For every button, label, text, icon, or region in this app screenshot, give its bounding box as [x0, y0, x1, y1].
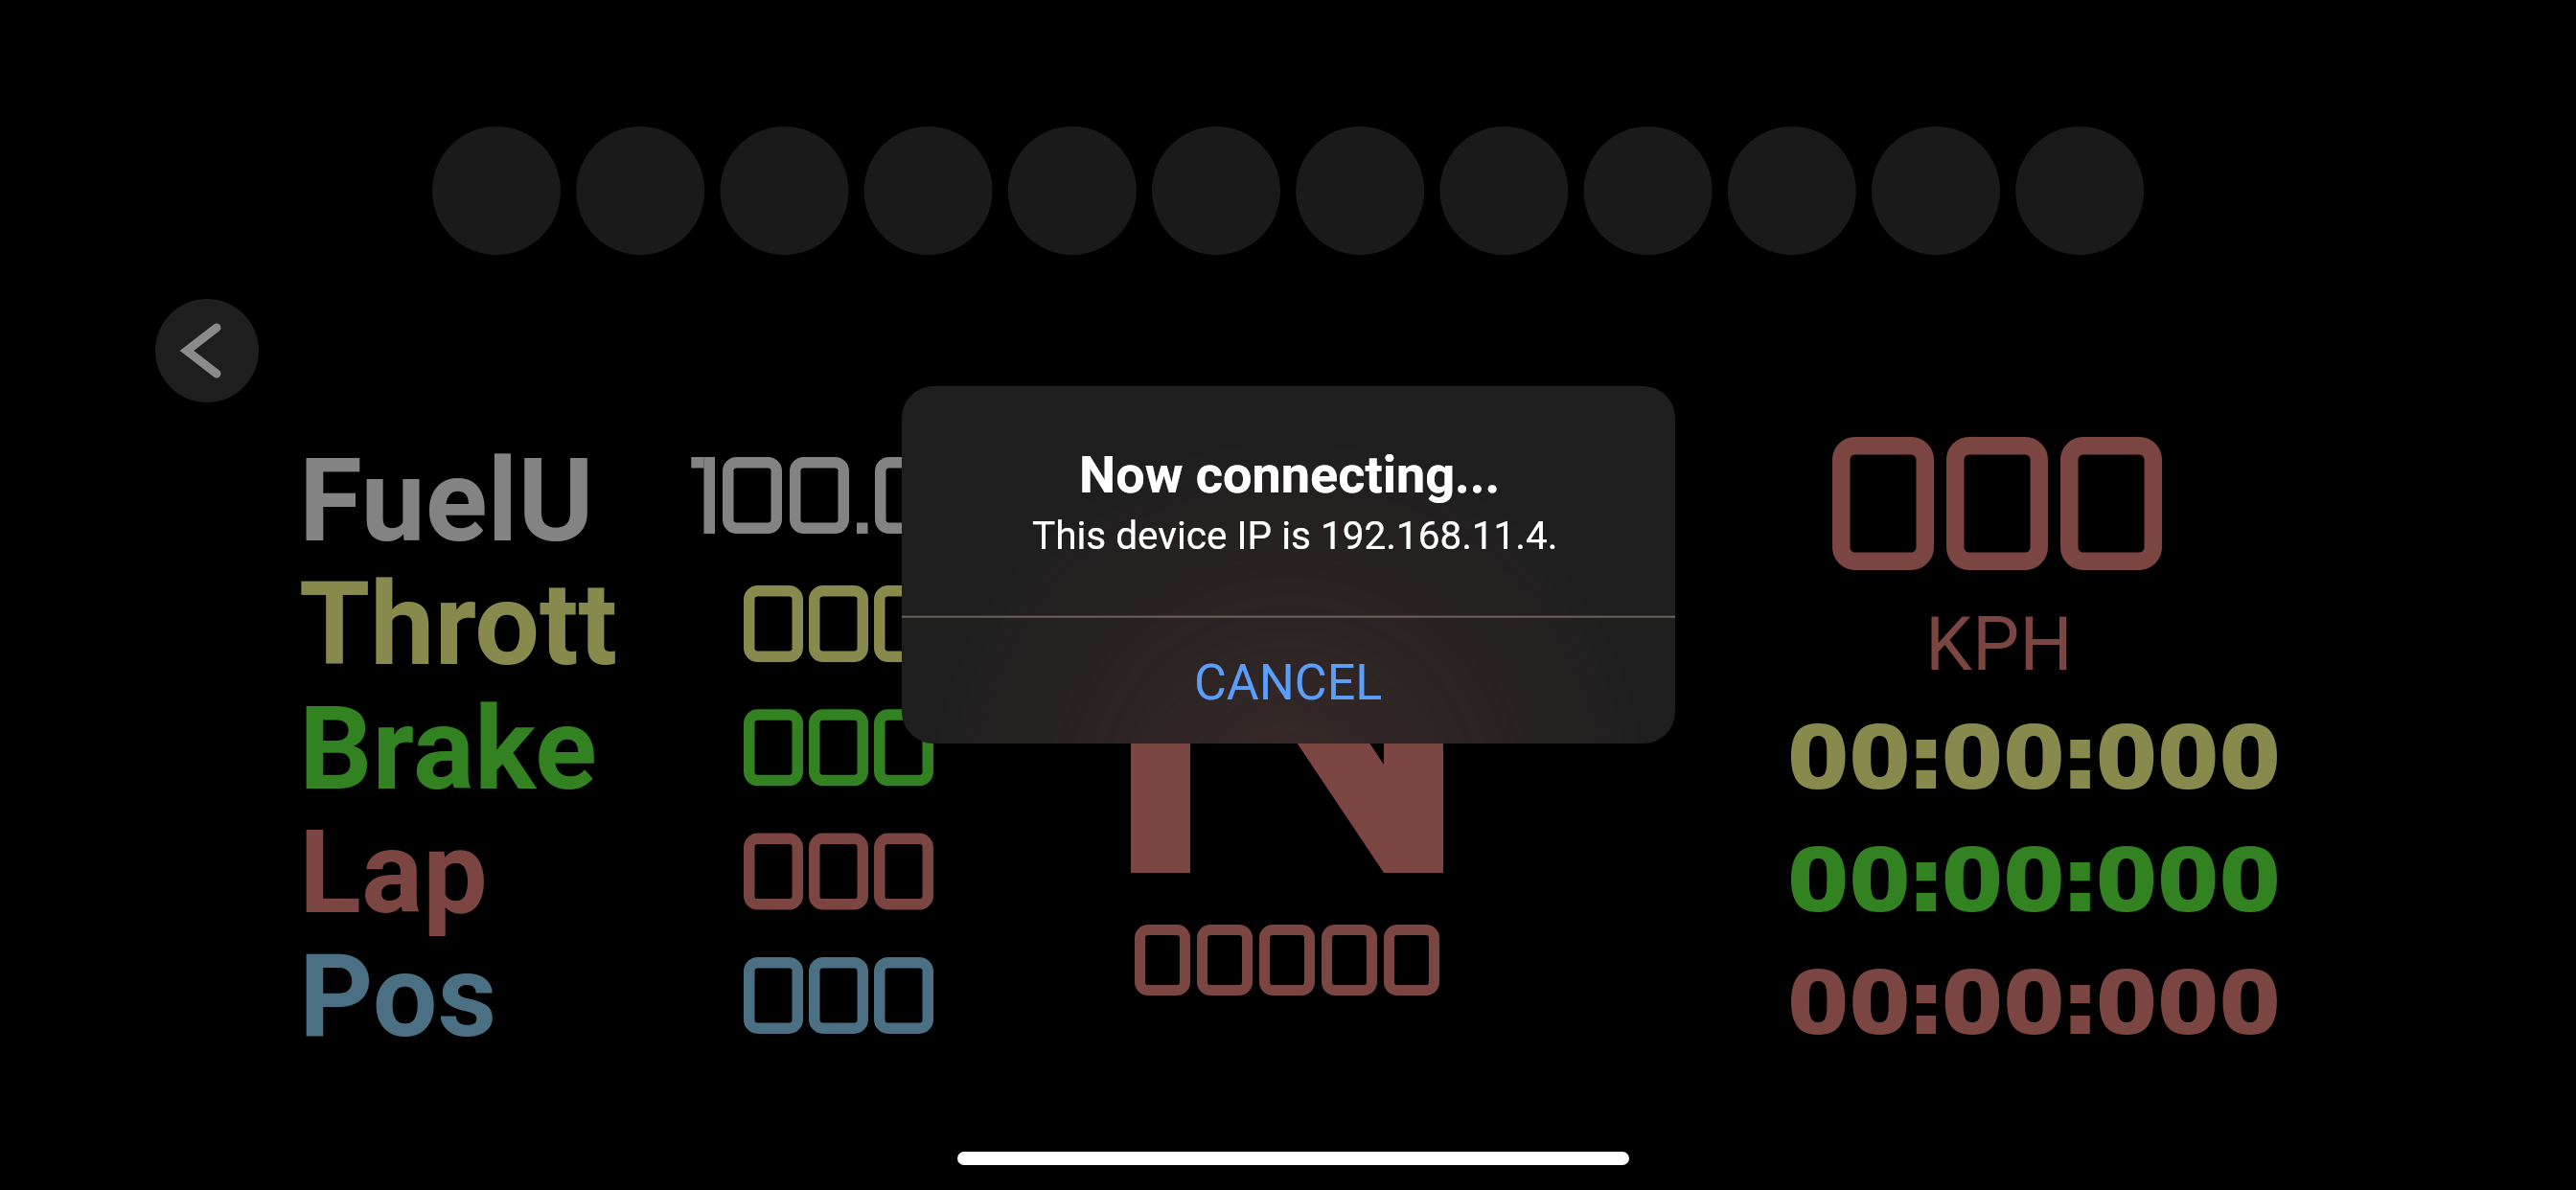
staticText: Thrott: [299, 558, 618, 693]
staticText: Pos: [299, 929, 497, 1064]
staticText: 00:00:000: [1787, 707, 2281, 808]
staticText: This device IP is 192.168.11.4.: [1032, 513, 1558, 558]
staticText: KPH: [1925, 601, 2073, 688]
staticText: Brake: [299, 682, 597, 817]
staticText: 00:00:000: [1787, 952, 2281, 1053]
staticText: CANCEL: [1194, 653, 1383, 712]
staticText: 00:00:000: [1787, 830, 2281, 930]
button[interactable]: CANCEL: [902, 617, 1675, 744]
staticText: Lap: [299, 806, 488, 941]
staticText: Now connecting...: [1079, 445, 1501, 505]
button[interactable]: Back: [155, 299, 259, 402]
staticText: FuelU: [299, 434, 594, 569]
